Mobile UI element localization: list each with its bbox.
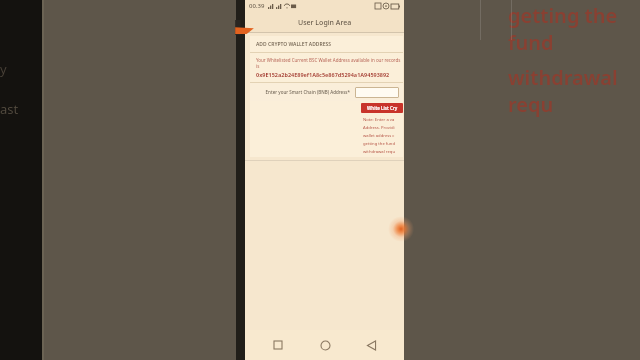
staticText: Note: Enter a va	[363, 117, 395, 123]
staticText: wallet address c	[363, 133, 395, 139]
staticText: Enter your Smart Chain (BNB) Address*	[254, 89, 350, 95]
staticText: 00.39	[249, 2, 265, 10]
button[interactable]: Recent apps	[265, 332, 291, 358]
staticText: y	[0, 60, 7, 78]
button[interactable]: White List Cry	[361, 103, 403, 113]
staticText: User Login Area	[298, 18, 352, 28]
staticText: withdrawal requ	[363, 149, 396, 155]
staticText: getting the fund	[508, 2, 640, 56]
button[interactable]: Back	[358, 332, 384, 358]
staticText: White List Cry	[367, 105, 398, 111]
staticText: getting the fund	[363, 141, 396, 147]
staticText: withdrawal requ	[508, 64, 640, 118]
staticText: Address. Providi	[363, 125, 395, 131]
button[interactable]: Home	[312, 332, 338, 358]
staticText: Your Whitelisted Current BSC Wallet Addr…	[256, 57, 403, 69]
staticText: ast	[0, 100, 19, 118]
staticText: 0x9E152a2b24E89ef1A8c5e867d5294a1A945938…	[256, 71, 390, 78]
staticText: ADD CRYPTO WALLET ADDRESS	[256, 41, 331, 48]
button[interactable]	[355, 87, 399, 98]
